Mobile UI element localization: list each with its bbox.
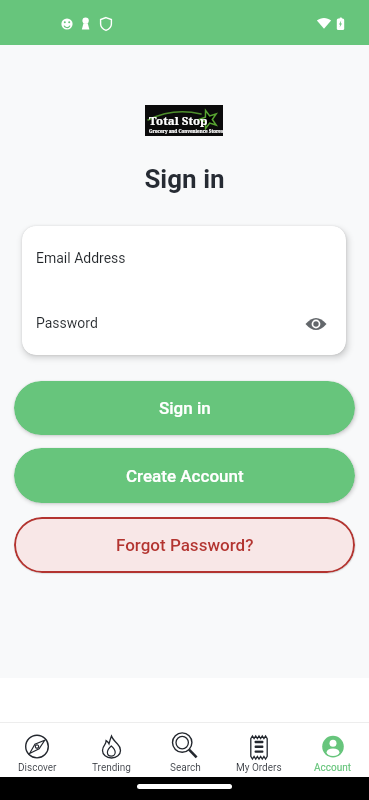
staticText: Password xyxy=(36,315,98,331)
button[interactable]: Account xyxy=(296,723,369,777)
button[interactable]: Discover xyxy=(0,723,74,777)
staticText: Discover xyxy=(18,762,57,774)
staticText: Forgot Password? xyxy=(116,535,254,555)
button[interactable]: Sign in xyxy=(14,381,355,435)
button[interactable]: Forgot Password? xyxy=(14,517,355,573)
staticText: Trending xyxy=(92,762,131,774)
button[interactable] xyxy=(304,311,328,335)
button[interactable]: My Orders xyxy=(222,723,296,777)
staticText: Account xyxy=(314,762,352,774)
staticText: Grocery and Convenience Stores xyxy=(149,128,224,134)
staticText: Sign in xyxy=(0,164,369,194)
button[interactable]: Search xyxy=(148,723,222,777)
button[interactable]: Password xyxy=(22,290,346,355)
staticText: Email Address xyxy=(36,250,126,266)
staticText: Total Stop xyxy=(149,113,208,129)
staticText: Sign in xyxy=(159,398,211,418)
staticText: Create Account xyxy=(126,466,244,486)
button[interactable]: Create Account xyxy=(14,448,355,503)
staticText: My Orders xyxy=(236,762,282,774)
button[interactable]: Email Address xyxy=(22,226,346,290)
button[interactable]: Trending xyxy=(74,723,148,777)
staticText: Search xyxy=(170,762,201,774)
